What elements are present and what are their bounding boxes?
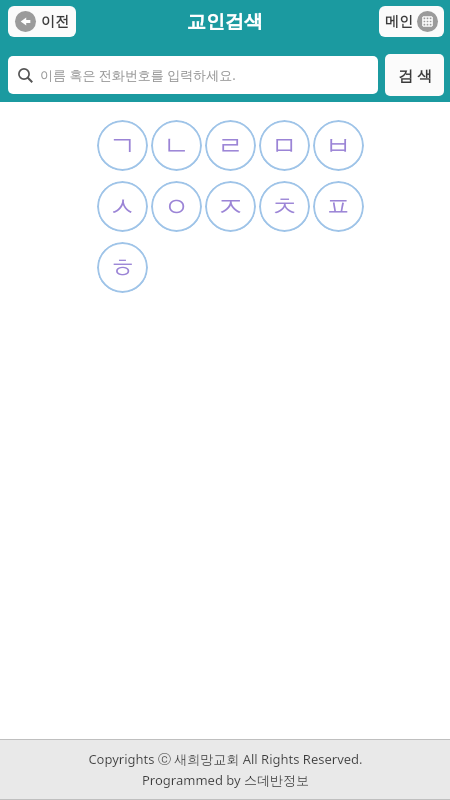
button[interactable]: ㅍ <box>313 181 364 232</box>
button[interactable]: ㄹ <box>205 120 256 171</box>
staticText: ㅎ <box>109 251 136 285</box>
button[interactable]: 검 색 <box>385 54 444 96</box>
button[interactable]: 메인 <box>379 6 444 37</box>
staticText: ㄱ <box>109 129 136 163</box>
button[interactable]: ㅅ <box>97 181 148 232</box>
staticText: ㄹ <box>217 129 244 163</box>
staticText: 교인검색 <box>187 10 263 34</box>
button[interactable]: ㅊ <box>259 181 310 232</box>
staticText: ㅁ <box>271 129 298 163</box>
button[interactable]: ㅈ <box>205 181 256 232</box>
button[interactable]: 이름 혹은 전화번호를 입력하세요. <box>8 56 378 94</box>
staticText: ㅈ <box>217 190 244 224</box>
staticText: 이전 <box>41 13 69 31</box>
staticText: 메인 <box>385 13 413 31</box>
button[interactable]: ㄱ <box>97 120 148 171</box>
button[interactable]: ㄴ <box>151 120 202 171</box>
staticText: ㅅ <box>109 190 136 224</box>
staticText: Programmed by 스데반정보 <box>142 771 309 789</box>
button[interactable]: ㅁ <box>259 120 310 171</box>
button[interactable]: ㅎ <box>97 242 148 293</box>
staticText: 이름 혹은 전화번호를 입력하세요. <box>40 66 236 84</box>
staticText: ㅊ <box>271 190 298 224</box>
other: Main menu <box>417 11 438 32</box>
staticText: ㅂ <box>325 129 352 163</box>
button[interactable]: ㅇ <box>151 181 202 232</box>
staticText: ㅇ <box>163 190 190 224</box>
staticText: 검 색 <box>398 65 432 85</box>
staticText: ㅍ <box>325 190 352 224</box>
button[interactable]: ㅂ <box>313 120 364 171</box>
button[interactable]: 이전 <box>8 6 76 37</box>
staticText: Copyrights ⓒ 새희망교회 All Rights Reserved. <box>88 750 363 768</box>
staticText: ㄴ <box>163 129 190 163</box>
